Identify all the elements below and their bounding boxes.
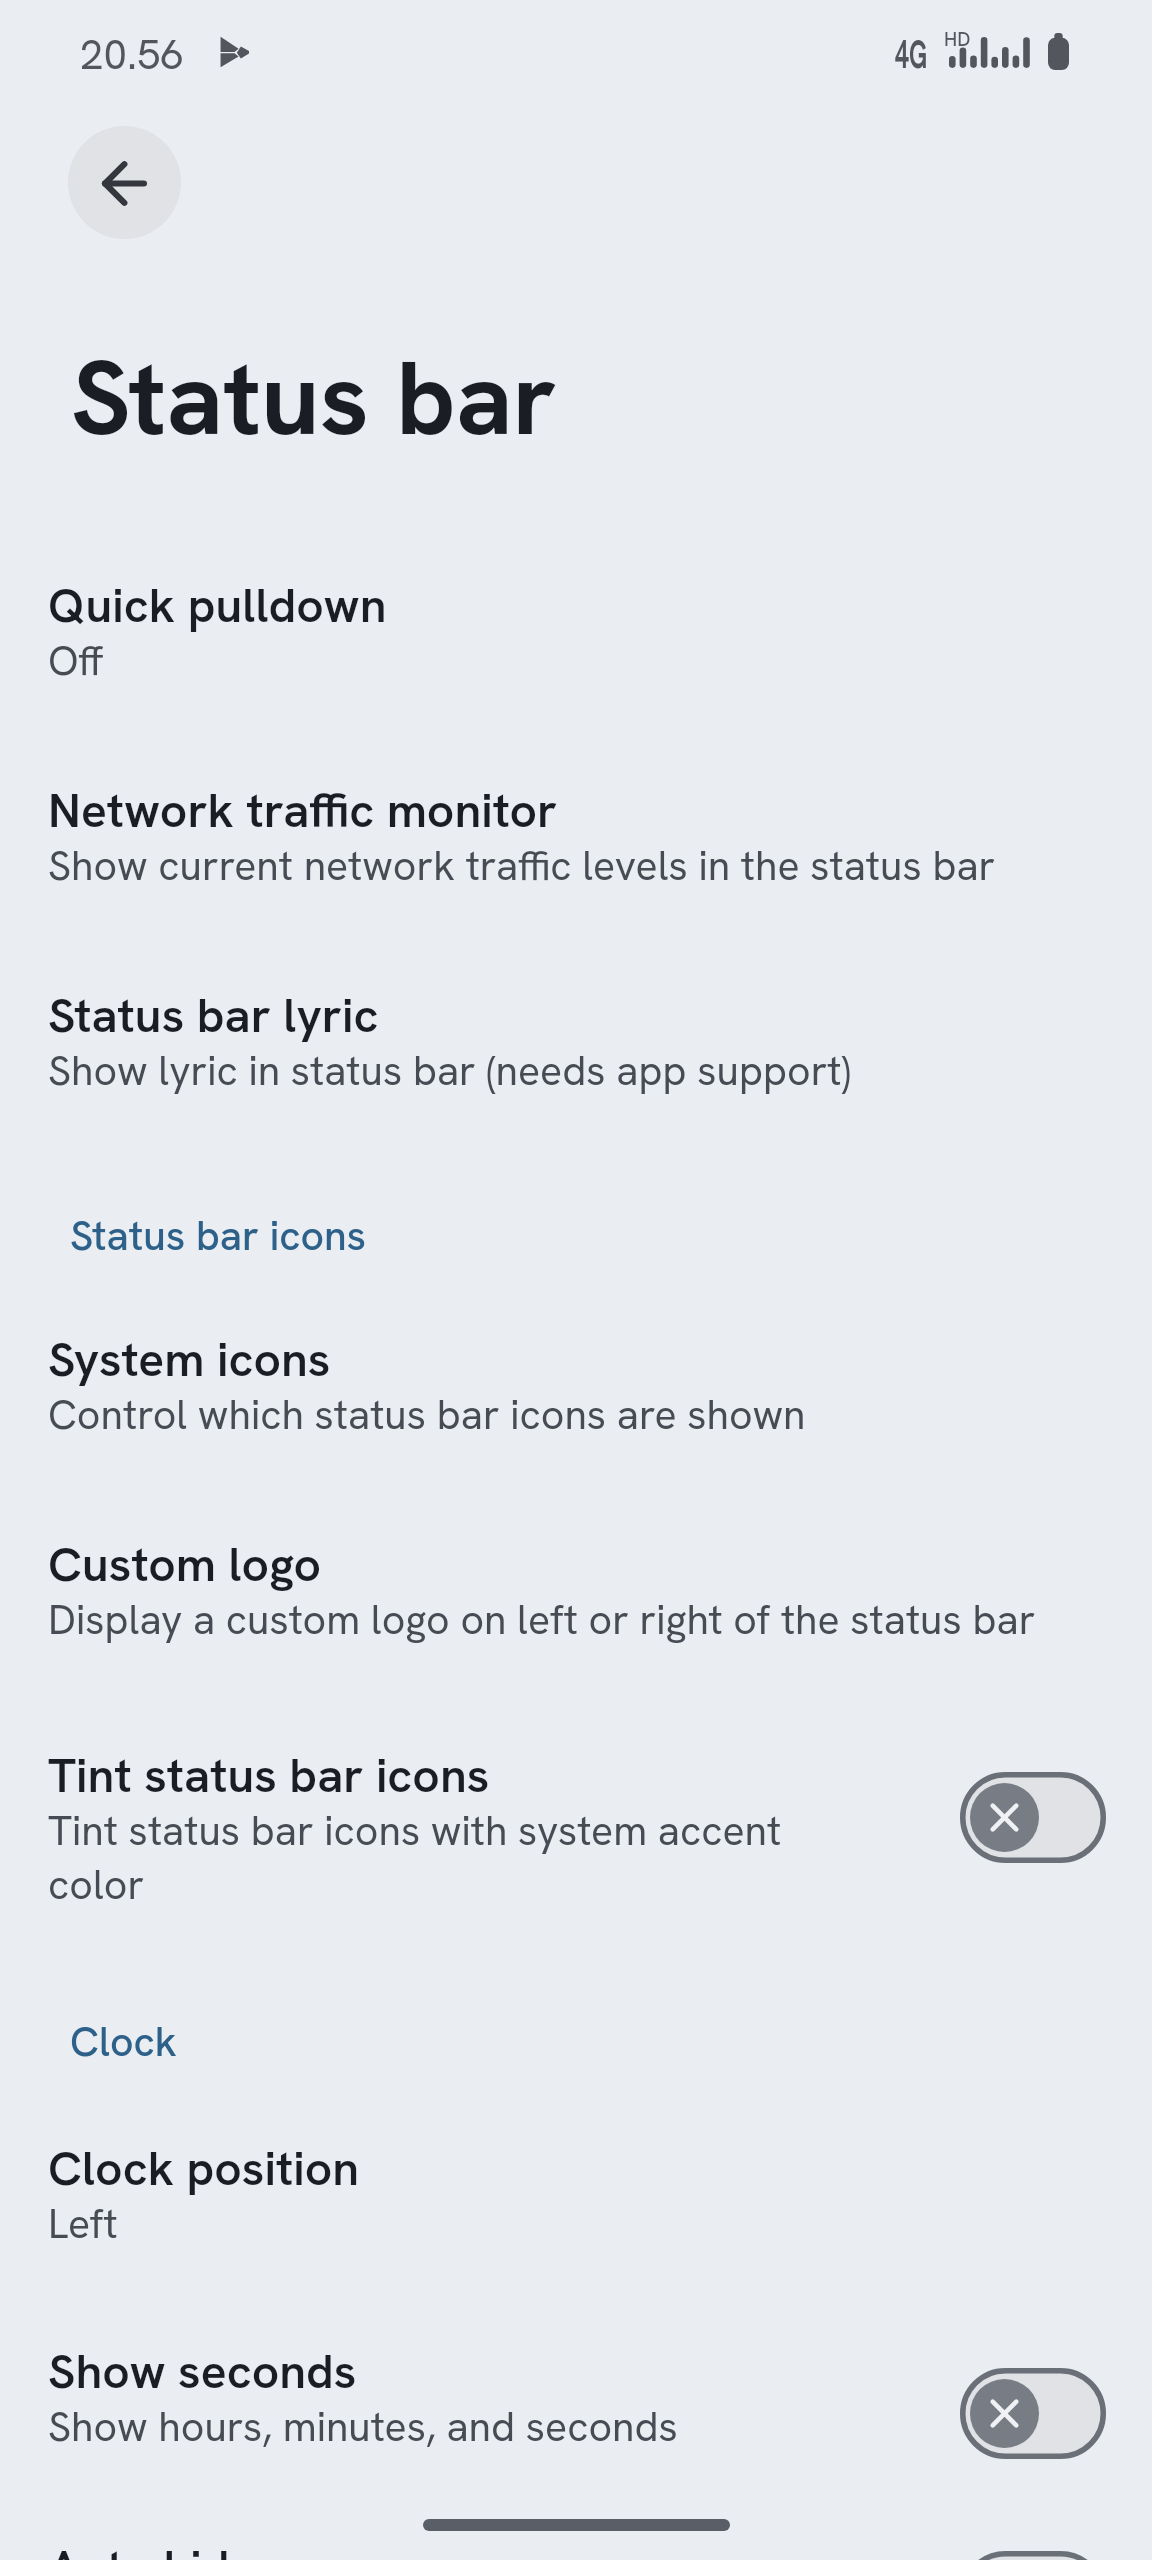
button[interactable]: Navigate up [68,126,181,239]
button[interactable]: Toggle off [960,1772,1106,1863]
staticText: Left [48,2197,1108,2251]
staticText: Clock [70,2015,178,2068]
staticText: Quick pulldown [48,574,1108,637]
staticText: Tint status bar icons with system accent… [48,1804,808,1912]
button[interactable]: Auto hide [0,2496,1152,2560]
staticText: HD [944,26,970,53]
staticText: 4G [895,29,927,80]
staticText: Show hours, minutes, and seconds [48,2400,1108,2454]
staticText: 20.56 [80,27,185,82]
button[interactable]: Toggle off [960,2551,1106,2560]
staticText: Show lyric in status bar (needs app supp… [48,1044,1108,1098]
staticText: Off [48,634,1108,688]
staticText: Tint status bar icons [48,1744,808,1807]
staticText: Custom logo [48,1533,1108,1596]
staticText: Control which status bar icons are shown [48,1388,1108,1442]
staticText: Clock position [48,2137,1108,2200]
staticText: Status bar lyric [48,984,1108,1047]
button[interactable]: Tint status bar icons [0,1704,1152,1874]
button[interactable]: Clock position [0,2097,1152,2267]
staticText: Network traffic monitor [48,779,1108,842]
staticText: Show current network traffic levels in t… [48,839,1108,893]
button[interactable]: Custom logo [0,1493,1152,1663]
staticText: System icons [48,1328,1108,1391]
button[interactable]: Show seconds [0,2300,1152,2470]
button[interactable]: Toggle off [960,2368,1106,2459]
button[interactable]: Status bar lyric [0,944,1152,1114]
staticText: Display a custom logo on left or right o… [48,1593,1108,1647]
button[interactable]: Quick pulldown [0,534,1152,704]
button: Status bar icons [70,1143,1152,1261]
button: Clock [70,1949,1152,2067]
button[interactable]: Network traffic monitor [0,739,1152,909]
staticText: Show seconds [48,2340,1108,2403]
staticText: Status bar [71,330,557,466]
staticText: Auto hide [48,2536,1108,2560]
button[interactable]: System icons [0,1288,1152,1458]
staticText: Status bar icons [70,1209,366,1262]
